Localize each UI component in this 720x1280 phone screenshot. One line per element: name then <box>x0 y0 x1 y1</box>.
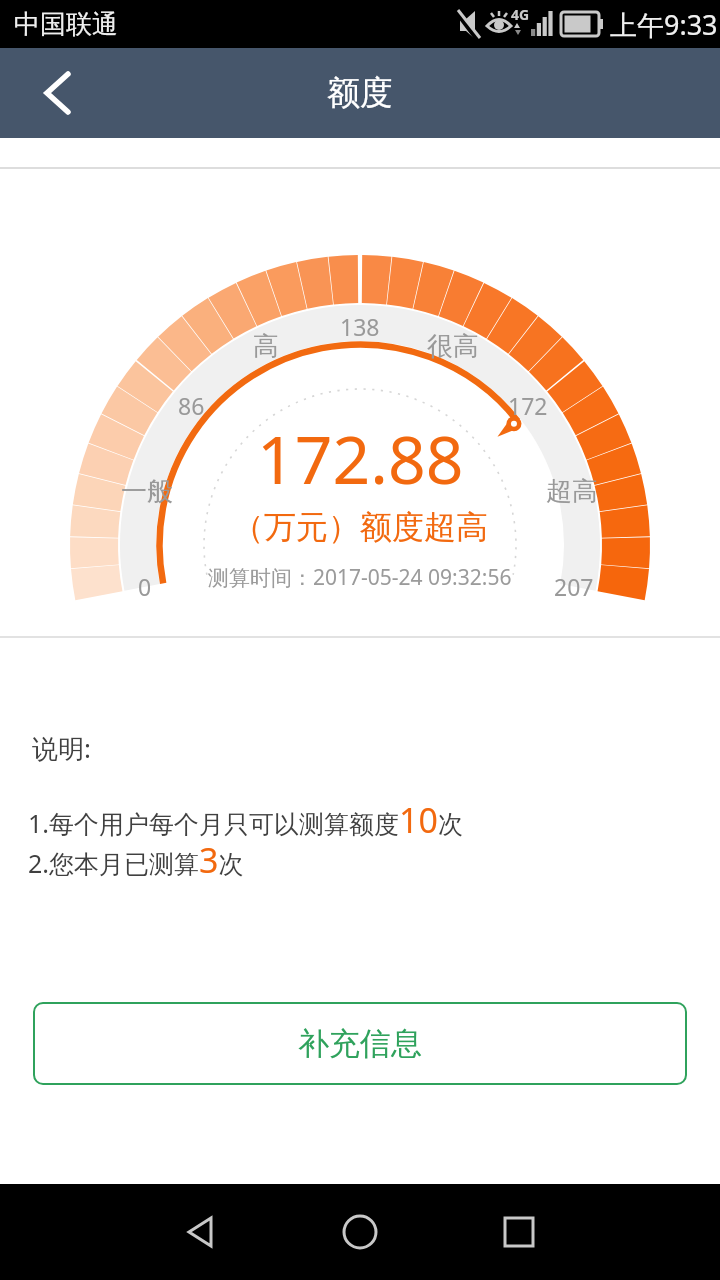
staticText: 172.88 <box>257 413 464 503</box>
staticText: 额度 <box>327 72 393 114</box>
button[interactable] <box>160 1200 240 1264</box>
staticText: 超高 <box>546 475 598 508</box>
staticText: 测算时间：2017-05-24 09:32:56 <box>208 563 512 592</box>
staticText: 172 <box>508 390 548 421</box>
button[interactable] <box>0 48 90 138</box>
staticText: 说明: <box>32 730 91 766</box>
button[interactable] <box>479 1200 559 1264</box>
staticText: 很高 <box>427 330 479 363</box>
staticText: 补充信息 <box>298 1024 422 1063</box>
staticText: 一般 <box>121 475 173 508</box>
staticText: 上午9:33 <box>610 6 718 43</box>
staticText: 86 <box>178 390 205 421</box>
staticText: 高 <box>253 330 279 363</box>
staticText: 138 <box>340 311 380 342</box>
staticText: （万元）额度超高 <box>232 507 488 547</box>
staticText: 1.每个用户每个月只可以测算额度10次 <box>28 797 463 843</box>
staticText: 4G <box>511 5 530 24</box>
staticText: 207 <box>554 571 594 602</box>
button[interactable] <box>320 1200 400 1264</box>
button[interactable]: 补充信息 <box>33 1002 687 1085</box>
staticText: 0 <box>138 571 152 602</box>
staticText: 中国联通 <box>14 8 118 41</box>
staticText: 2.您本月已测算3次 <box>28 837 244 883</box>
